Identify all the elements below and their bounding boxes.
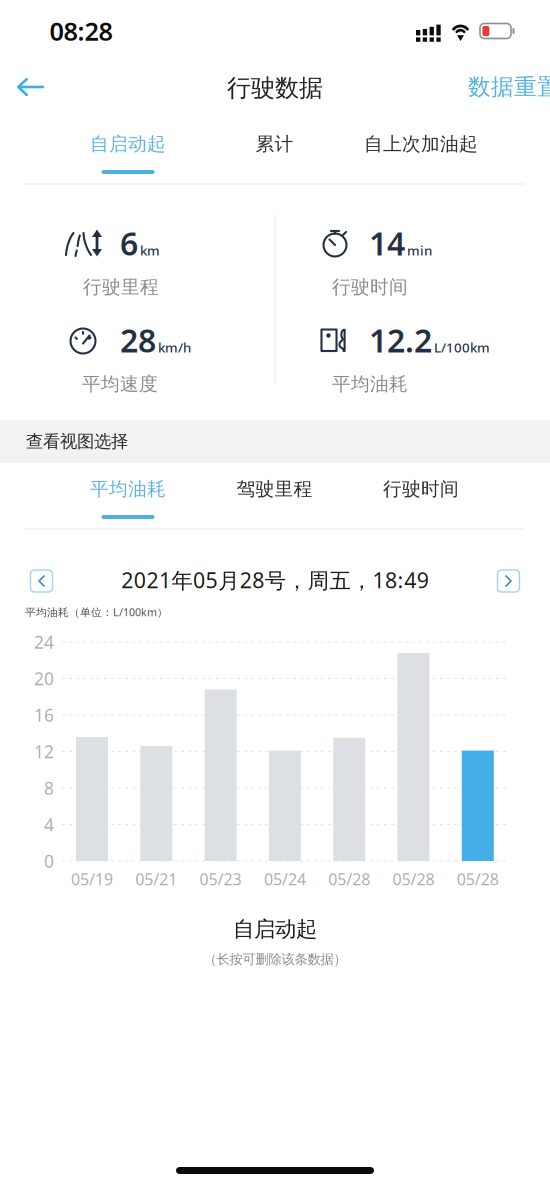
button[interactable]: 自启动起 — [55, 118, 201, 184]
staticText: 数据重置 — [468, 73, 550, 101]
staticText: 12 — [34, 740, 54, 763]
staticText: 28 — [120, 319, 156, 361]
staticText: 累计 — [255, 132, 293, 155]
button[interactable]: 自上次加油起 — [348, 118, 494, 184]
staticText: 自启动起 — [90, 132, 166, 155]
staticText: 行驶时间 — [332, 275, 408, 298]
staticText: 行驶里程 — [83, 275, 159, 298]
staticText: 行驶数据 — [227, 73, 323, 103]
button[interactable]: 返回 — [2, 61, 58, 113]
button[interactable]: 上一条数据 — [25, 565, 57, 597]
staticText: 24 — [34, 630, 54, 653]
staticText: 08:28 — [49, 14, 112, 48]
staticText: 14 — [369, 222, 405, 264]
staticText: 05/28 — [392, 868, 434, 890]
staticText: 05/19 — [71, 868, 113, 890]
staticText: 20 — [34, 667, 54, 690]
staticText: min — [407, 241, 432, 259]
button[interactable]: 驾驶里程 — [201, 463, 347, 529]
staticText: 05/28 — [328, 868, 370, 890]
staticText: 自上次加油起 — [364, 132, 478, 155]
staticText: 16 — [34, 703, 54, 726]
staticText: 0 — [44, 849, 54, 872]
button[interactable]: 行驶时间 — [348, 463, 494, 529]
staticText: 05/23 — [200, 868, 242, 890]
staticText: 8 — [44, 776, 54, 799]
staticText: 平均速度 — [82, 372, 158, 395]
staticText: 查看视图选择 — [26, 431, 128, 452]
staticText: 2021年05月28号，周五，18:49 — [121, 566, 429, 594]
staticText: 平均油耗（单位：L/100km） — [25, 605, 168, 619]
button[interactable]: 数据重置 — [468, 61, 550, 113]
staticText: 05/21 — [135, 868, 177, 890]
staticText: km/h — [158, 338, 191, 356]
button[interactable]: 平均油耗 — [55, 463, 201, 529]
staticText: （长按可删除该条数据） — [203, 951, 346, 968]
staticText: 自启动起 — [233, 916, 317, 942]
staticText: 4 — [44, 813, 54, 836]
button[interactable]: 下一条数据 — [492, 565, 524, 597]
staticText: L/100km — [434, 338, 490, 356]
staticText: 行驶时间 — [383, 477, 459, 500]
staticText: 6 — [120, 222, 138, 264]
staticText: 05/24 — [264, 868, 306, 890]
staticText: 平均油耗 — [90, 477, 166, 500]
staticText: 05/28 — [457, 868, 499, 890]
staticText: 驾驶里程 — [236, 477, 312, 500]
staticText: km — [140, 241, 160, 259]
button[interactable]: 累计 — [201, 118, 347, 184]
staticText: 平均油耗 — [332, 372, 408, 395]
staticText: 12.2 — [369, 319, 432, 361]
